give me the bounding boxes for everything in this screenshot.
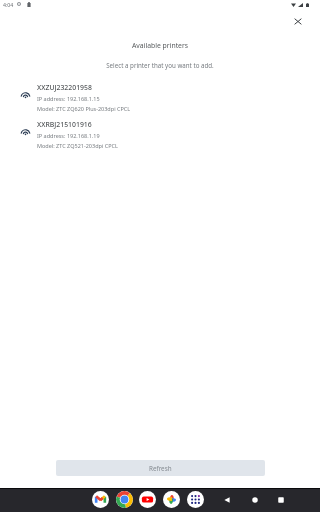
staticText: XXRBJ215101916: [37, 120, 92, 129]
button[interactable]: Back: [217, 490, 237, 510]
button[interactable]: App: [163, 491, 180, 508]
staticText: 4:04: [3, 1, 14, 8]
staticText: Select a printer that you want to add.: [0, 61, 320, 69]
staticText: Available printers: [0, 41, 320, 50]
staticText: XXZUJ232201958: [37, 83, 92, 92]
button[interactable]: Close: [288, 11, 308, 31]
button[interactable]: App: [187, 491, 204, 508]
button[interactable]: App: [139, 491, 156, 508]
staticText: Model: ZTC ZQ521-203dpi CPCL: [37, 142, 118, 149]
button[interactable]: XXZUJ232201958: [0, 82, 320, 119]
button[interactable]: Recents: [271, 490, 291, 510]
staticText: Model: ZTC ZQ620 Plus-203dpi CPCL: [37, 105, 131, 112]
staticText: Refresh: [149, 464, 172, 473]
button[interactable]: Refresh: [56, 460, 265, 476]
button[interactable]: XXRBJ215101916: [0, 119, 320, 156]
staticText: IP address: 192.168.1.19: [37, 132, 100, 139]
button[interactable]: App: [92, 491, 109, 508]
staticText: IP address: 192.168.1.15: [37, 95, 100, 102]
button[interactable]: Home: [245, 490, 265, 510]
button[interactable]: App: [116, 491, 133, 508]
